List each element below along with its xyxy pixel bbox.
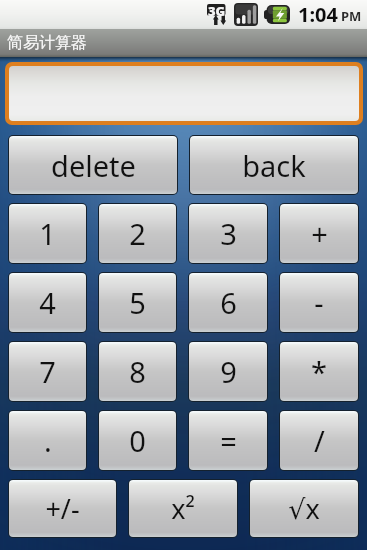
staticText: +/- (45, 490, 80, 527)
button[interactable]: √x (250, 480, 358, 537)
button[interactable]: 7 (9, 342, 86, 401)
button[interactable]: 3 (189, 204, 267, 263)
button[interactable]: back (190, 136, 358, 194)
button[interactable]: / (280, 411, 358, 470)
button[interactable]: 2 (99, 204, 176, 263)
staticText: 2 (129, 214, 146, 253)
staticText: 1 (39, 214, 56, 253)
staticText: = (220, 421, 237, 460)
staticText: PM (341, 7, 362, 25)
staticText: + (311, 214, 328, 253)
staticText: 4 (39, 283, 56, 322)
staticText: x² (171, 490, 195, 527)
button[interactable]: 0 (99, 411, 176, 470)
button[interactable]: +/- (9, 480, 116, 537)
button[interactable]: 5 (99, 273, 176, 332)
staticText: delete (51, 146, 136, 185)
staticText: 3 (220, 214, 237, 253)
other: Signal strength (234, 3, 258, 26)
staticText: . (44, 421, 52, 460)
button[interactable]: * (280, 342, 358, 401)
button[interactable]: delete (9, 136, 177, 194)
staticText: √x (288, 490, 320, 527)
staticText: 8 (129, 352, 146, 391)
staticText: 6 (220, 283, 237, 322)
other: 3G network (207, 4, 229, 25)
button[interactable]: = (189, 411, 267, 470)
staticText: * (311, 352, 327, 391)
staticText: 3G (208, 2, 226, 20)
button[interactable]: + (280, 204, 358, 263)
button[interactable]: 1 (9, 204, 86, 263)
button[interactable]: 8 (99, 342, 176, 401)
staticText: - (314, 283, 324, 322)
button[interactable]: 4 (9, 273, 86, 332)
staticText: 简易计算器 (7, 33, 87, 53)
staticText: 7 (39, 352, 56, 391)
button[interactable]: x² (129, 480, 237, 537)
staticText: 5 (129, 283, 146, 322)
other: Battery charging (264, 5, 290, 24)
button[interactable]: . (9, 411, 86, 470)
button[interactable] (9, 66, 359, 121)
staticText: back (242, 146, 306, 185)
button[interactable]: 9 (189, 342, 267, 401)
button[interactable]: - (280, 273, 358, 332)
staticText: 1:04 (298, 1, 338, 28)
button[interactable]: 6 (189, 273, 267, 332)
staticText: 9 (220, 352, 237, 391)
staticText: 0 (129, 421, 146, 460)
staticText: / (314, 421, 325, 460)
